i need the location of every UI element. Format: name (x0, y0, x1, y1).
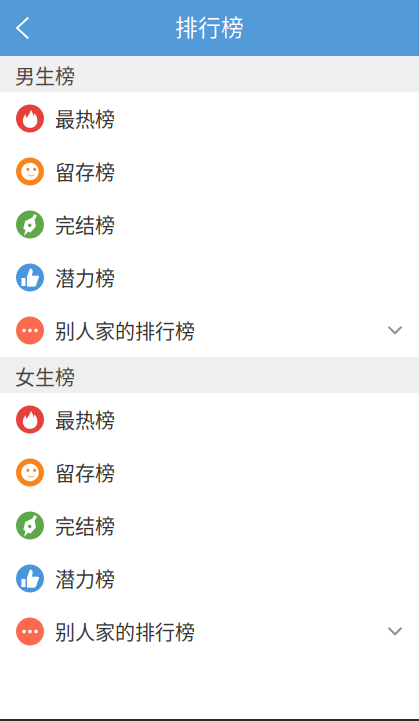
staticText: 男生榜 (15, 61, 75, 90)
button[interactable]: 别人家的排行榜 (0, 304, 419, 357)
staticText: 留存榜 (55, 157, 115, 186)
button[interactable]: 潜力榜 (0, 251, 419, 304)
staticText: 潜力榜 (55, 564, 115, 593)
button[interactable]: 完结榜 (0, 499, 419, 552)
staticText: 潜力榜 (55, 263, 115, 292)
button[interactable]: 最热榜 (0, 92, 419, 145)
staticText: 排行榜 (175, 10, 244, 42)
button[interactable]: Back (0, 0, 46, 56)
button[interactable]: 完结榜 (0, 198, 419, 251)
staticText: 最热榜 (55, 405, 115, 434)
staticText: 完结榜 (55, 511, 115, 540)
staticText: 女生榜 (15, 362, 75, 391)
button[interactable]: 留存榜 (0, 145, 419, 198)
staticText: 留存榜 (55, 458, 115, 487)
button[interactable]: 别人家的排行榜 (0, 605, 419, 658)
button[interactable]: 留存榜 (0, 446, 419, 499)
staticText: 别人家的排行榜 (55, 316, 195, 345)
button[interactable]: 潜力榜 (0, 552, 419, 605)
staticText: 别人家的排行榜 (55, 617, 195, 646)
staticText: 完结榜 (55, 210, 115, 239)
button[interactable]: 最热榜 (0, 393, 419, 446)
staticText: 最热榜 (55, 104, 115, 133)
